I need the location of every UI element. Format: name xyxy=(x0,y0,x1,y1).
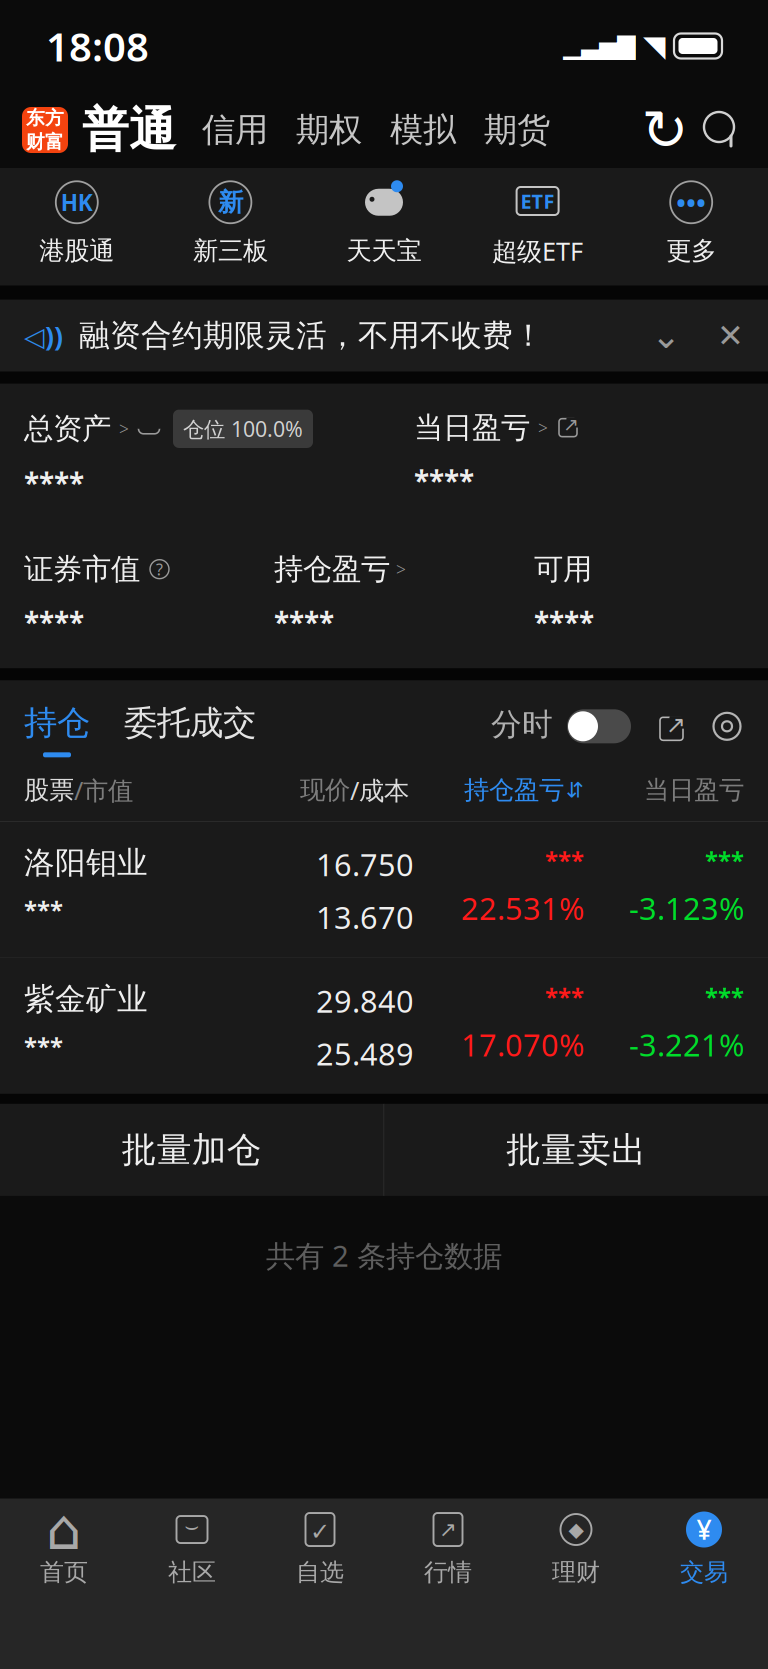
staticText: 持仓盈亏 xyxy=(274,551,390,587)
staticText: 交易 xyxy=(680,1557,728,1587)
staticText: 更多 xyxy=(666,235,716,266)
button[interactable]: 批量卖出 xyxy=(384,1104,768,1196)
staticText: 当日盈亏 xyxy=(644,775,744,806)
button[interactable]: 设置 xyxy=(686,709,768,757)
staticText: ✕ xyxy=(717,317,744,354)
button[interactable]: 搜索 xyxy=(698,107,744,153)
staticText: *** xyxy=(705,980,744,1012)
button[interactable]: 委托成交 xyxy=(90,702,256,757)
staticText: ▁▃▅▇ xyxy=(563,32,635,60)
staticText: ⌄ xyxy=(651,315,681,356)
button[interactable]: ¥ xyxy=(640,1498,768,1587)
staticText: > xyxy=(396,558,406,581)
staticText: 29.840 xyxy=(316,980,414,1021)
staticText: -3.221% xyxy=(629,1024,744,1065)
button[interactable]: 紫金矿业 xyxy=(0,958,768,1094)
staticText: ↗ xyxy=(666,711,686,738)
button[interactable]: ETF xyxy=(461,174,614,272)
staticText: 超级ETF xyxy=(492,234,583,268)
staticText: 分时 xyxy=(491,706,553,743)
staticText: -3.123% xyxy=(629,888,744,928)
staticText: 现价 xyxy=(300,775,350,806)
button[interactable]: ◁)) xyxy=(0,300,768,372)
staticText: 股票 xyxy=(24,775,74,806)
staticText: 信用 xyxy=(202,109,268,150)
staticText: ◆ xyxy=(568,1518,583,1541)
staticText: 仓位 100.0% xyxy=(183,415,303,443)
staticText: 社区 xyxy=(168,1557,216,1587)
staticText: ••• xyxy=(676,185,706,219)
staticText: 批量加仓 xyxy=(122,1129,262,1171)
staticText: 新三板 xyxy=(193,235,268,266)
staticText: 天天宝 xyxy=(346,235,421,266)
staticText: ⇵ xyxy=(566,778,584,802)
staticText: 22.531% xyxy=(461,888,584,928)
staticText: *** xyxy=(24,894,63,925)
button[interactable]: ◆ xyxy=(512,1498,640,1587)
staticText: 共有 2 条持仓数据 xyxy=(266,1236,502,1275)
staticText: **** xyxy=(274,603,334,640)
button[interactable]: 新 xyxy=(154,175,307,270)
staticText: 自选 xyxy=(296,1557,344,1587)
staticText: 18:08 xyxy=(46,19,149,72)
staticText: ↻ xyxy=(641,98,688,162)
button[interactable]: ↗ xyxy=(384,1498,512,1587)
button[interactable]: 持仓盈亏 xyxy=(409,775,584,806)
button[interactable]: 期权 xyxy=(296,109,362,150)
staticText: 行情 xyxy=(424,1557,472,1587)
staticText: 持仓 xyxy=(24,702,90,743)
staticText: 13.670 xyxy=(316,897,414,937)
staticText: 普通 xyxy=(82,101,176,159)
staticText: **** xyxy=(24,603,84,640)
staticText: 批量卖出 xyxy=(506,1129,646,1171)
staticText: 财富 xyxy=(26,130,64,153)
staticText: 首页 xyxy=(40,1557,88,1587)
staticText: 东方 xyxy=(26,107,64,129)
button[interactable]: 刷新 xyxy=(642,107,688,153)
staticText: 证券市值 xyxy=(24,551,140,587)
staticText: 期权 xyxy=(296,109,362,150)
button[interactable]: ⌣ xyxy=(128,1498,256,1587)
button[interactable]: 信用 xyxy=(202,109,268,150)
staticText: ETF xyxy=(521,188,555,214)
button[interactable]: 模拟 xyxy=(390,109,456,150)
staticText: 当日盈亏 xyxy=(414,410,530,446)
staticText: *** xyxy=(545,980,584,1012)
button[interactable]: 洛阳钼业 xyxy=(0,822,768,957)
staticText: 期货 xyxy=(484,109,550,150)
button[interactable]: 批量加仓 xyxy=(0,1104,383,1196)
button[interactable]: 天天宝 xyxy=(307,175,461,270)
staticText: *** xyxy=(24,1030,63,1062)
staticText: ⌂ xyxy=(46,1498,82,1561)
staticText: ◥ xyxy=(643,29,666,63)
staticText: 25.489 xyxy=(316,1033,414,1074)
button[interactable]: ✓ xyxy=(256,1498,384,1587)
button[interactable]: 东方 xyxy=(22,101,176,159)
button[interactable]: 分享 xyxy=(631,714,686,757)
staticText: /成本 xyxy=(350,773,409,807)
staticText: 可用 xyxy=(534,551,592,587)
staticText: 洛阳钼业 xyxy=(24,844,148,882)
staticText: 理财 xyxy=(552,1557,600,1587)
button[interactable]: 持仓 xyxy=(0,702,90,757)
staticText: ⌣ xyxy=(184,1515,199,1538)
staticText: 17.070% xyxy=(461,1024,584,1065)
staticText: **** xyxy=(414,462,474,499)
staticText: HK xyxy=(61,187,93,217)
staticText: 委托成交 xyxy=(124,702,256,743)
staticText: ✓ xyxy=(310,1518,330,1545)
staticText: > xyxy=(538,416,548,439)
staticText: ? xyxy=(156,558,163,580)
button[interactable]: 分时开关 xyxy=(553,709,631,757)
staticText: *** xyxy=(705,844,744,876)
staticText: /市值 xyxy=(74,773,133,807)
staticText: *** xyxy=(545,844,584,876)
staticText: 港股通 xyxy=(39,235,114,266)
button[interactable]: 期货 xyxy=(484,109,550,150)
staticText: > xyxy=(119,417,129,440)
button[interactable]: HK xyxy=(0,175,154,270)
staticText: 16.750 xyxy=(316,844,414,885)
button[interactable]: ••• xyxy=(614,175,768,270)
staticText: ◁)) xyxy=(24,318,63,353)
button[interactable]: ⌂ xyxy=(0,1498,128,1587)
